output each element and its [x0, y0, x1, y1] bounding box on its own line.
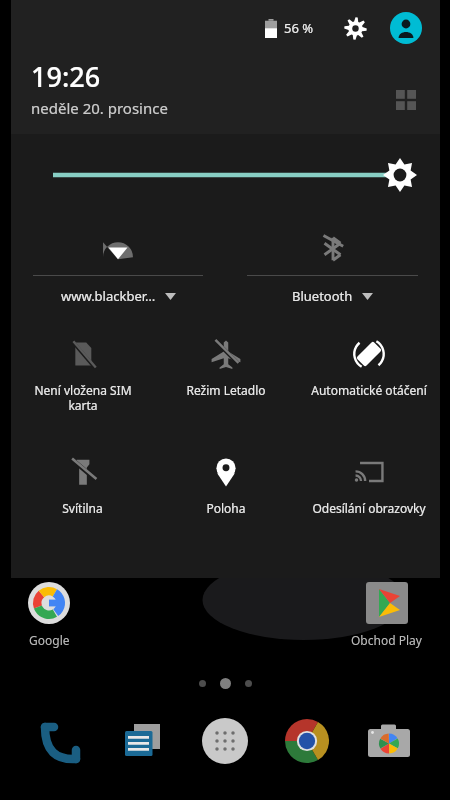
button[interactable]: Settings	[338, 11, 372, 45]
staticText: 56 %	[284, 19, 314, 37]
staticText: Obchod Play	[351, 632, 422, 648]
staticText: Není vložena SIM karta	[34, 382, 132, 413]
staticText: Svítilna	[62, 500, 103, 516]
button[interactable]: Camera	[360, 712, 418, 770]
button[interactable]: Messages	[114, 712, 172, 770]
button[interactable]: Odesílání obrazovky	[297, 448, 440, 550]
staticText: Bluetooth	[292, 287, 353, 305]
button[interactable]: Chrome	[278, 712, 336, 770]
staticText: neděle 20. prosince	[31, 98, 168, 118]
button[interactable]: Režim Letadlo	[154, 330, 297, 432]
button[interactable]: Google	[0, 578, 98, 648]
button[interactable]: Poloha	[154, 448, 297, 550]
staticText: Odesílání obrazovky	[312, 500, 426, 516]
staticText: Poloha	[206, 500, 246, 516]
button[interactable]: Phone	[32, 712, 90, 770]
staticText: Automatické otáčení	[311, 382, 427, 398]
button[interactable]: Brightness	[11, 134, 440, 216]
button[interactable]: Není vložena SIM karta	[11, 330, 154, 432]
button[interactable]: Obchod Play	[323, 578, 450, 648]
staticText: Google	[29, 632, 70, 648]
staticText: www.blackber…	[61, 287, 156, 305]
staticText: 19:26	[31, 58, 101, 95]
button[interactable]: Automatické otáčení	[297, 330, 440, 432]
button[interactable]: www.blackber…	[11, 220, 225, 320]
button[interactable]: Bluetooth	[225, 220, 440, 320]
button[interactable]: All apps	[196, 712, 254, 770]
button[interactable]: Svítilna	[11, 448, 154, 550]
button[interactable]: Edit tiles	[390, 84, 422, 116]
button[interactable]: User	[390, 12, 422, 44]
staticText: Režim Letadlo	[186, 382, 266, 398]
